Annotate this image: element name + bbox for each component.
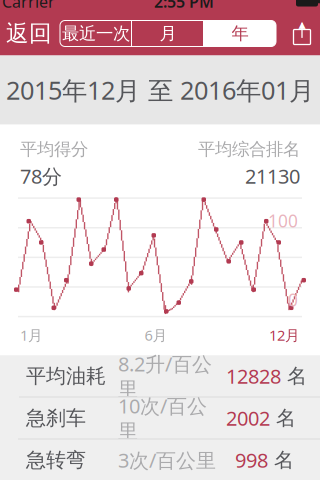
staticText: 998 [235,447,268,473]
staticText: 78分 [20,163,62,189]
staticText: 平均得分 [20,138,88,160]
button[interactable]: 平均油耗 [0,355,320,396]
button[interactable]: 返回 [0,13,58,53]
staticText: 名 [268,448,294,472]
staticText: 年 [231,23,248,44]
staticText: 21130 [245,163,300,189]
staticText: 2015年12月 至 2016年01月 [6,73,314,107]
staticText: 2:55 PM [154,0,214,12]
button[interactable]: 急刹车 [0,396,320,438]
staticText: 1月 [20,325,43,345]
staticText: 返回 [6,20,52,47]
staticText: Carrier [2,0,55,12]
staticText: 3次/百公里 [118,447,216,473]
button[interactable]: 最近一次 [60,20,132,46]
staticText: 名 [270,406,296,430]
staticText: 急转弯 [26,448,86,472]
staticText: 12月 [269,325,300,345]
staticText: 10次/百公里 [118,392,207,443]
button[interactable]: Share [284,18,320,48]
staticText: 6月 [144,325,167,345]
staticText: 最近一次 [62,23,130,44]
button[interactable]: 年 [204,20,276,46]
staticText: 名 [281,364,307,388]
staticText: 2002 [226,405,270,431]
staticText: ▲ [298,19,305,30]
button[interactable]: 急转弯 [0,438,320,480]
staticText: 0 [288,288,298,311]
staticText: 12828 [226,363,281,389]
staticText: 急刹车 [26,406,86,430]
staticText: 平均油耗 [26,364,106,388]
staticText: 100 [268,209,298,232]
staticText: 平均综合排名 [198,138,300,160]
button[interactable]: 月 [132,20,204,46]
staticText: 8.2升/百公里 [118,350,212,401]
staticText: 月 [159,23,176,44]
